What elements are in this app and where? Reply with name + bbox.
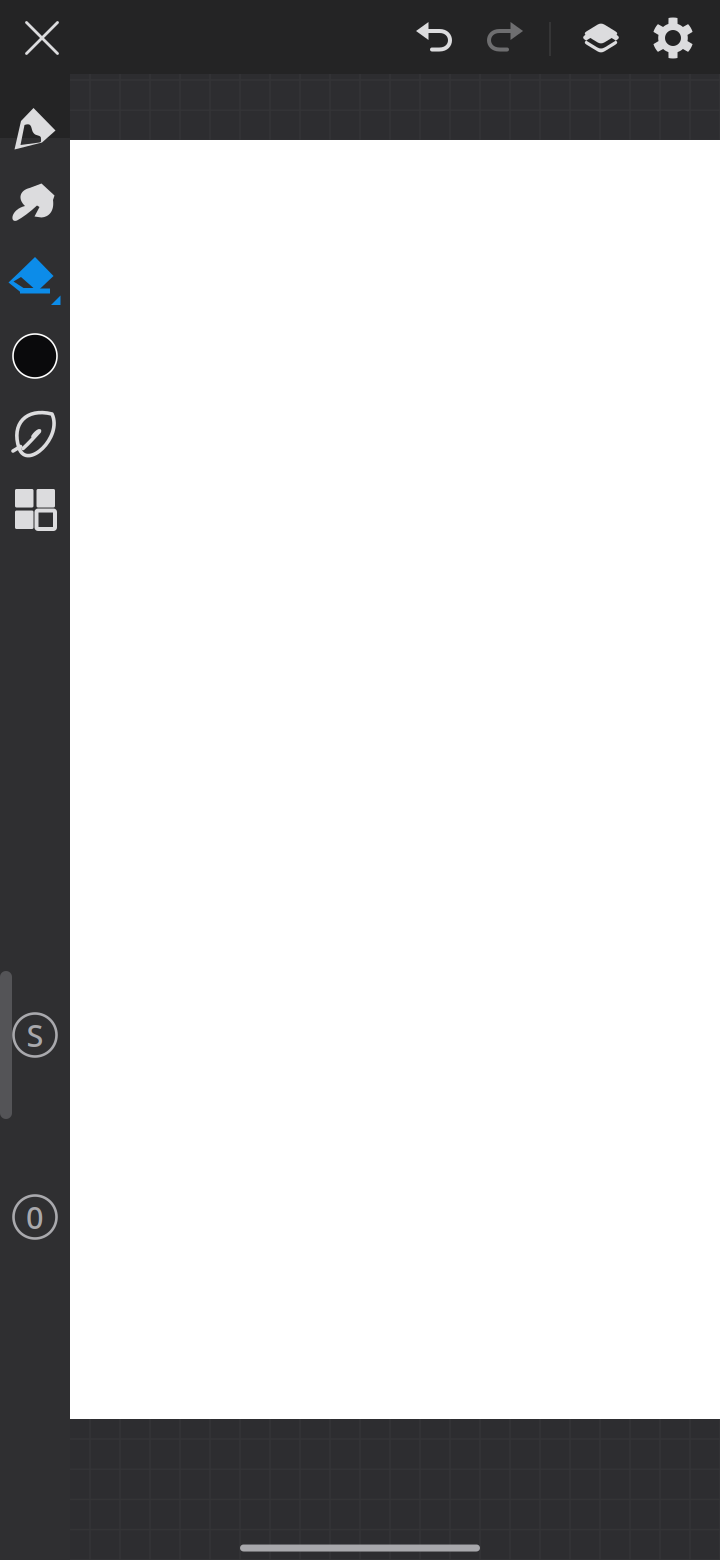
- button[interactable]: Library: [0, 474, 70, 544]
- button[interactable]: Opacity: [5, 1187, 65, 1247]
- button[interactable]: Redo: [474, 10, 530, 66]
- button[interactable]: Eraser: [0, 245, 70, 317]
- button[interactable]: Marker: [0, 168, 70, 240]
- button[interactable]: Undo: [409, 10, 465, 66]
- button[interactable]: Layers: [573, 10, 629, 66]
- button[interactable]: Colour: [0, 321, 70, 391]
- button[interactable]: Close: [12, 8, 72, 68]
- staticText: S: [26, 1015, 43, 1055]
- staticText: 0: [26, 1197, 44, 1237]
- button[interactable]: Pen: [0, 92, 70, 164]
- button[interactable]: Smudge: [0, 397, 70, 469]
- button[interactable]: Settings: [645, 10, 701, 66]
- button[interactable]: Size: [5, 1005, 65, 1065]
